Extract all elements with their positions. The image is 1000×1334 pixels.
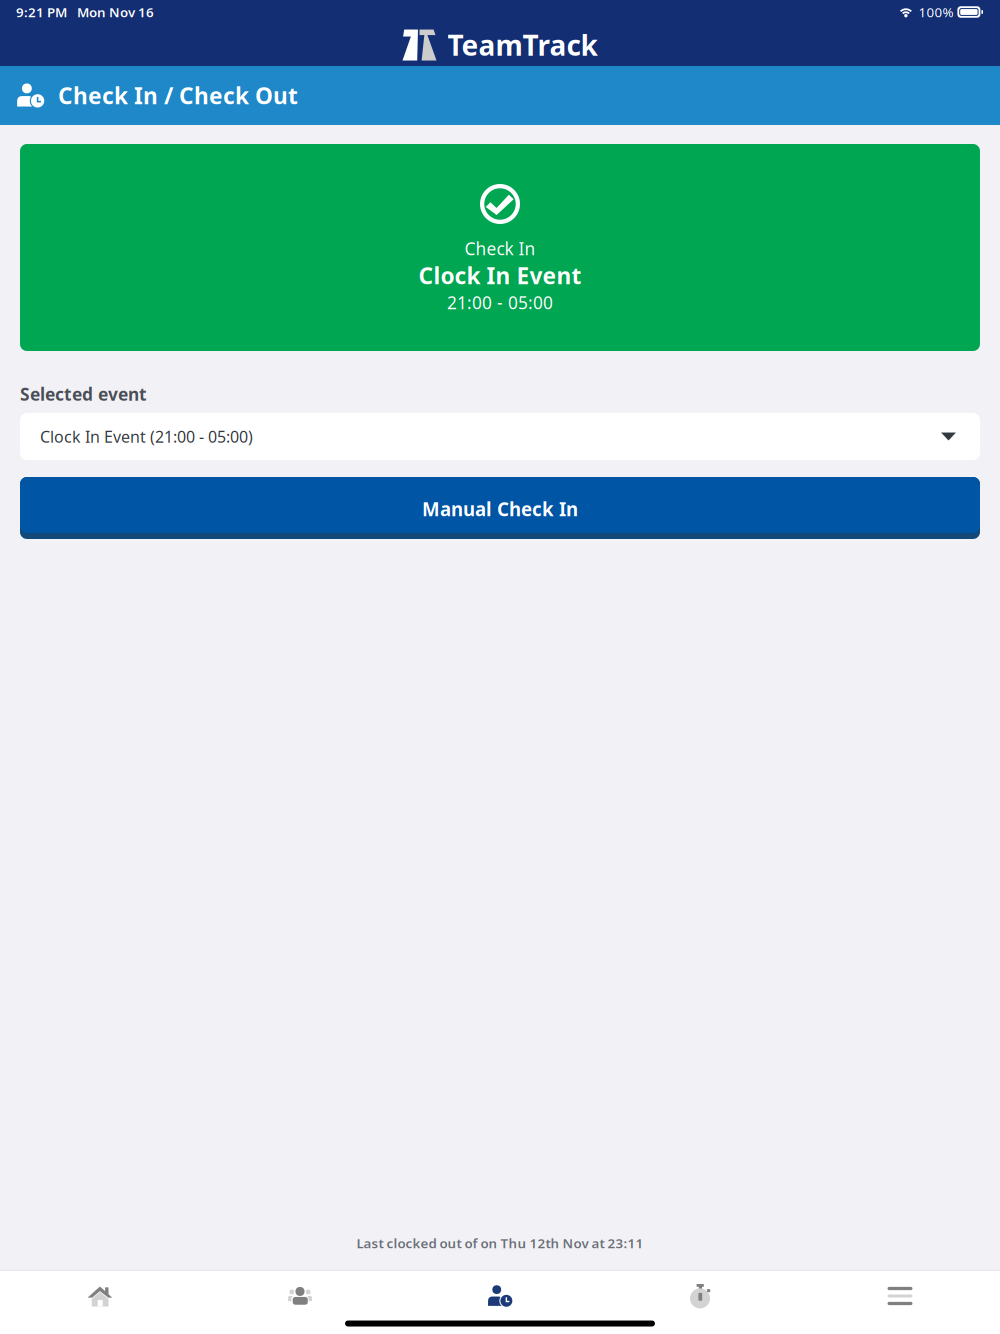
staticText: Manual Check In: [422, 497, 578, 521]
staticText: Clock In Event: [418, 260, 581, 290]
staticText: 21:00 - 05:00: [447, 291, 553, 314]
button[interactable]: Team: [200, 1271, 400, 1321]
staticText: Selected event: [20, 382, 147, 405]
staticText: Check In: [464, 237, 535, 260]
staticText: TeamTrack: [447, 26, 597, 64]
staticText: 9:21 PM: [16, 3, 67, 21]
staticText: Last clocked out of on Thu 12th Nov at 2…: [356, 1234, 643, 1252]
button[interactable]: Timesheets: [600, 1271, 800, 1321]
button[interactable]: Home: [0, 1271, 200, 1321]
button[interactable]: More: [800, 1271, 1000, 1321]
staticText: 100%: [918, 3, 953, 21]
button[interactable]: Check In Check Out: [400, 1271, 600, 1321]
staticText: Check In / Check Out: [58, 80, 298, 110]
staticText: Clock In Event (21:00 - 05:00): [40, 426, 253, 447]
button[interactable]: Manual Check In: [20, 477, 980, 539]
button[interactable]: Clock In Event (21:00 - 05:00): [20, 413, 980, 460]
staticText: Mon Nov 16: [77, 3, 154, 21]
